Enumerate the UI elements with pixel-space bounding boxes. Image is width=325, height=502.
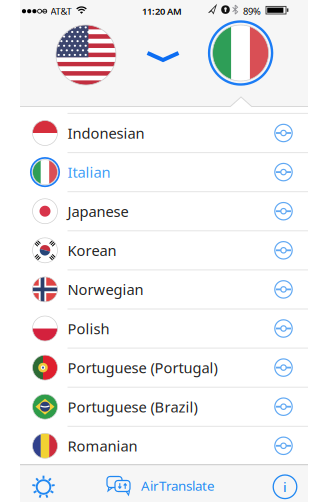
button[interactable]: Romanian: [20, 426, 308, 465]
staticText: AirTranslate: [141, 477, 215, 494]
button[interactable]: Portuguese (Brazil): [20, 387, 308, 426]
staticText: Japanese: [67, 201, 128, 221]
button[interactable]: Indonesian: [20, 113, 308, 153]
staticText: Portuguese (Brazil): [67, 397, 197, 416]
button[interactable]: Polish: [20, 309, 308, 348]
button[interactable]: Italian: [20, 152, 308, 192]
staticText: i: [283, 478, 287, 496]
staticText: Romanian: [67, 436, 137, 456]
button[interactable]: [28, 472, 58, 502]
button[interactable]: [209, 21, 272, 84]
staticText: 11:20 AM: [142, 5, 182, 17]
button[interactable]: Japanese: [20, 192, 308, 231]
staticText: Norwegian: [67, 280, 143, 299]
button[interactable]: i: [273, 475, 297, 499]
staticText: 89%: [243, 5, 261, 17]
staticText: Portuguese (Portugal): [67, 358, 217, 377]
staticText: Indonesian: [67, 123, 144, 143]
staticText: AT&T: [50, 5, 71, 17]
staticText: Polish: [67, 319, 109, 338]
staticText: Italian: [67, 162, 110, 182]
button[interactable]: Korean: [20, 231, 308, 270]
button[interactable]: [56, 25, 116, 85]
button[interactable]: AirTranslate: [105, 474, 215, 496]
button[interactable]: Norwegian: [20, 270, 308, 309]
staticText: Korean: [67, 241, 116, 260]
button[interactable]: Portuguese (Portugal): [20, 348, 308, 387]
